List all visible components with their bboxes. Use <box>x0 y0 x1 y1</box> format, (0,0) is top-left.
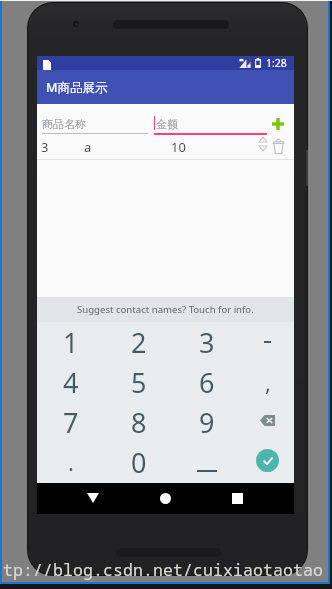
other: Delete <box>260 415 275 426</box>
staticText: 金额 <box>156 117 178 131</box>
staticText: 4 <box>63 364 79 401</box>
button[interactable]: 8 <box>105 402 173 442</box>
button[interactable]: Back <box>71 487 115 511</box>
staticText: 1 <box>63 324 79 361</box>
staticText: . <box>68 447 74 477</box>
staticText: 商品名称 <box>42 117 86 131</box>
button[interactable]: M商品展示 <box>37 70 294 104</box>
button[interactable]: 0 <box>105 442 173 482</box>
button[interactable]: . <box>37 442 105 482</box>
staticText: 2 <box>131 324 147 361</box>
staticText: 0 <box>131 444 147 481</box>
button[interactable]: Home <box>143 487 187 511</box>
staticText: 7 <box>63 404 79 441</box>
button[interactable]: Add <box>264 112 292 136</box>
staticText: 9 <box>199 404 215 441</box>
staticText: 1:28 <box>266 56 287 70</box>
button[interactable]: 1 <box>37 322 105 362</box>
staticText: 3 <box>199 324 215 361</box>
button[interactable] <box>241 322 294 362</box>
button[interactable]: 9 <box>173 402 241 442</box>
button[interactable]: 4 <box>37 362 105 402</box>
staticText: 10 <box>171 138 186 156</box>
button[interactable]: Suggest contact names? Touch for info. <box>37 297 294 322</box>
staticText: tp://blog.csdn.net/cuixiaotaotao <box>3 558 323 580</box>
staticText: Suggest contact names? Touch for info. <box>77 303 254 316</box>
staticText: , <box>265 367 271 397</box>
staticText: M商品展示 <box>46 79 108 96</box>
button[interactable] <box>173 442 241 482</box>
staticText: 3 <box>41 138 49 156</box>
staticText: a <box>84 138 92 156</box>
other: Done <box>256 449 279 472</box>
staticText: 8 <box>131 404 147 441</box>
staticText: 6 <box>199 364 215 401</box>
button[interactable]: , <box>241 362 294 402</box>
button[interactable]: Delete <box>241 402 294 442</box>
button[interactable]: Recent apps <box>215 487 259 511</box>
button[interactable]: 7 <box>37 402 105 442</box>
staticText: 5 <box>131 364 147 401</box>
button[interactable]: 3 <box>173 322 241 362</box>
button[interactable]: Done <box>241 442 294 482</box>
button[interactable]: 3 <box>37 136 294 160</box>
button[interactable]: 5 <box>105 362 173 402</box>
button[interactable]: 2 <box>105 322 173 362</box>
button[interactable]: 6 <box>173 362 241 402</box>
